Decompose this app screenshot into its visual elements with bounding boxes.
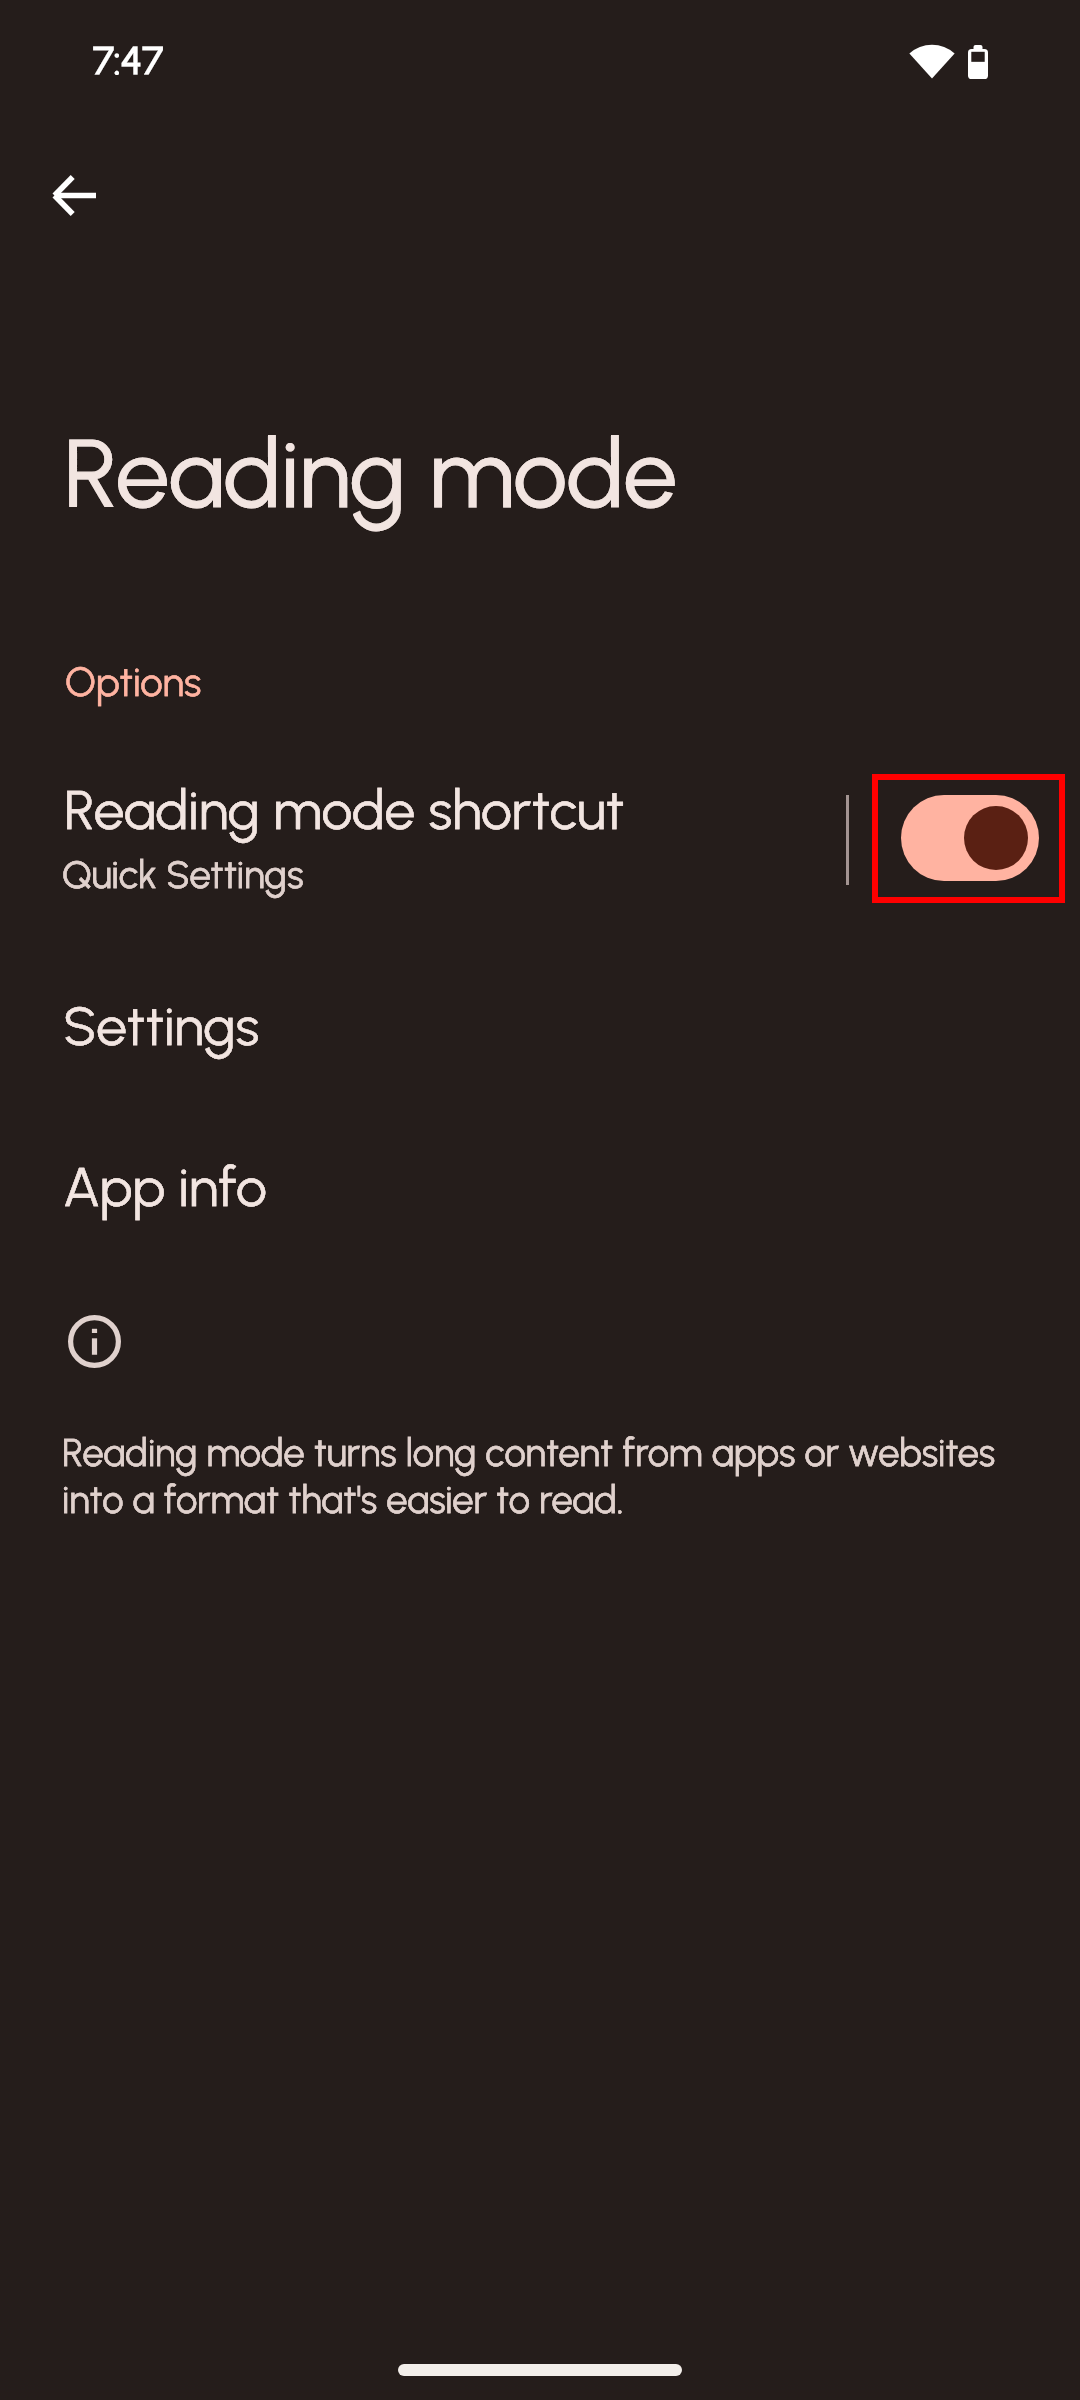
staticText: Reading mode shortcut (64, 777, 625, 843)
staticText: Reading mode shortcut (64, 777, 625, 843)
staticText: Reading mode turns long content from app… (62, 1430, 1022, 1523)
staticText: Reading mode turns long content from app… (62, 1430, 1022, 1523)
button[interactable]: App info (0, 1130, 1080, 1280)
staticText: Reading mode (64, 416, 678, 531)
staticText: 7:47 (93, 37, 163, 84)
staticText: App info (63, 1154, 267, 1220)
staticText: Quick Settings (62, 851, 304, 897)
staticText: Reading mode (64, 416, 678, 531)
staticText: Options (65, 658, 202, 706)
staticText: App info (63, 1154, 267, 1220)
staticText: Settings (63, 993, 260, 1059)
button[interactable]: Navigate up (25, 146, 123, 244)
staticText: Quick Settings (62, 851, 304, 897)
button[interactable]: Reading mode shortcut switch, on (872, 774, 1065, 903)
staticText: Options (65, 658, 202, 706)
staticText: Settings (63, 993, 260, 1059)
button[interactable]: Settings (0, 965, 1080, 1115)
button[interactable]: Reading mode shortcut (0, 745, 1080, 935)
